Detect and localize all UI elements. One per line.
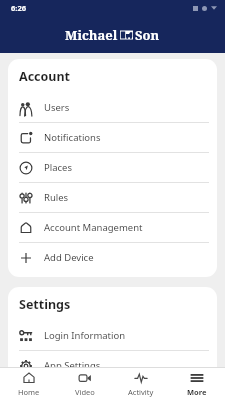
other: Add Device xyxy=(19,251,33,265)
button[interactable]: Users xyxy=(8,93,217,122)
staticText: Son xyxy=(135,26,160,44)
other: Places xyxy=(19,161,33,175)
other: Notifications xyxy=(19,131,33,145)
staticText: Account xyxy=(19,68,71,85)
staticText: Video xyxy=(75,387,95,397)
button[interactable]: Activity xyxy=(113,367,169,400)
other: Login Information xyxy=(19,329,33,343)
staticText: Account Management xyxy=(44,221,143,234)
other: Activity xyxy=(134,371,148,385)
staticText: Login Information xyxy=(44,329,126,342)
staticText: Places xyxy=(44,161,72,174)
staticText: Settings xyxy=(19,296,71,313)
button[interactable]: Account Management xyxy=(8,213,217,242)
staticText: More xyxy=(187,387,207,397)
other: More xyxy=(190,371,204,385)
staticText: Home xyxy=(18,387,40,397)
staticText: Michael xyxy=(65,26,118,44)
button[interactable]: Add Device xyxy=(8,243,217,272)
button[interactable]: Login Information xyxy=(8,321,217,350)
button[interactable]: Places xyxy=(8,153,217,182)
staticText: Add Device xyxy=(44,251,94,264)
staticText: Users xyxy=(44,101,70,114)
other: Video xyxy=(78,371,92,385)
other: App Settings xyxy=(19,359,33,367)
staticText: App Settings xyxy=(44,359,101,367)
other: Rules xyxy=(19,191,33,205)
staticText: Notifications xyxy=(44,131,101,144)
button[interactable]: More xyxy=(169,367,225,400)
other: Home xyxy=(22,371,36,385)
button[interactable]: Notifications xyxy=(8,123,217,152)
button[interactable]: Home xyxy=(0,367,57,400)
staticText: Activity xyxy=(128,387,154,397)
staticText: Rules xyxy=(44,191,69,204)
other: Users xyxy=(19,101,33,115)
button[interactable]: App Settings xyxy=(8,351,217,367)
staticText: 6:26 xyxy=(11,3,26,13)
button[interactable]: Rules xyxy=(8,183,217,212)
button[interactable]: Video xyxy=(57,367,113,400)
other: Account Management xyxy=(19,221,33,235)
